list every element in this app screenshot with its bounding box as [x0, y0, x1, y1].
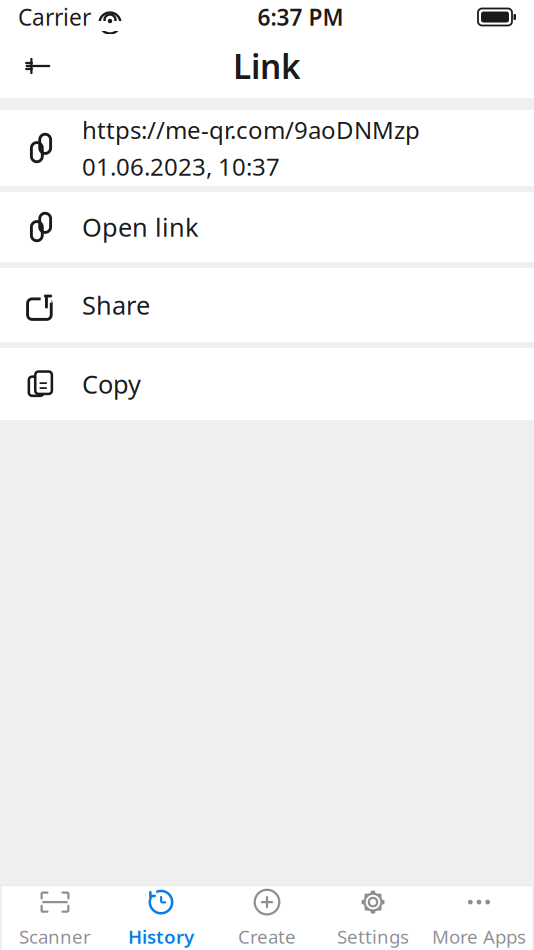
button[interactable]: More Apps	[426, 886, 532, 950]
staticText: Copy	[82, 367, 141, 401]
staticText: Share	[82, 288, 150, 322]
staticText: More Apps	[432, 924, 526, 949]
staticText: Settings	[337, 924, 409, 949]
staticText: https://me-qr.com/9aoDNMzp	[82, 114, 420, 145]
staticText: 6:37 PM	[257, 2, 343, 32]
button[interactable]: Settings	[320, 886, 426, 950]
button[interactable]: Scanner	[2, 886, 108, 950]
staticText: History	[128, 924, 194, 949]
staticText: 01.06.2023, 10:37	[82, 150, 280, 182]
button[interactable]: Open link	[0, 192, 534, 262]
staticText: Open link	[82, 210, 199, 244]
staticText: Create	[238, 924, 296, 949]
button[interactable]: Back	[10, 38, 66, 94]
staticText: Link	[233, 44, 301, 88]
button[interactable]: Share	[0, 268, 534, 342]
button[interactable]: History	[108, 886, 214, 950]
button[interactable]: Create	[214, 886, 320, 950]
staticText: Carrier	[18, 2, 91, 32]
button[interactable]: Copy	[0, 348, 534, 420]
staticText: Scanner	[19, 924, 91, 949]
